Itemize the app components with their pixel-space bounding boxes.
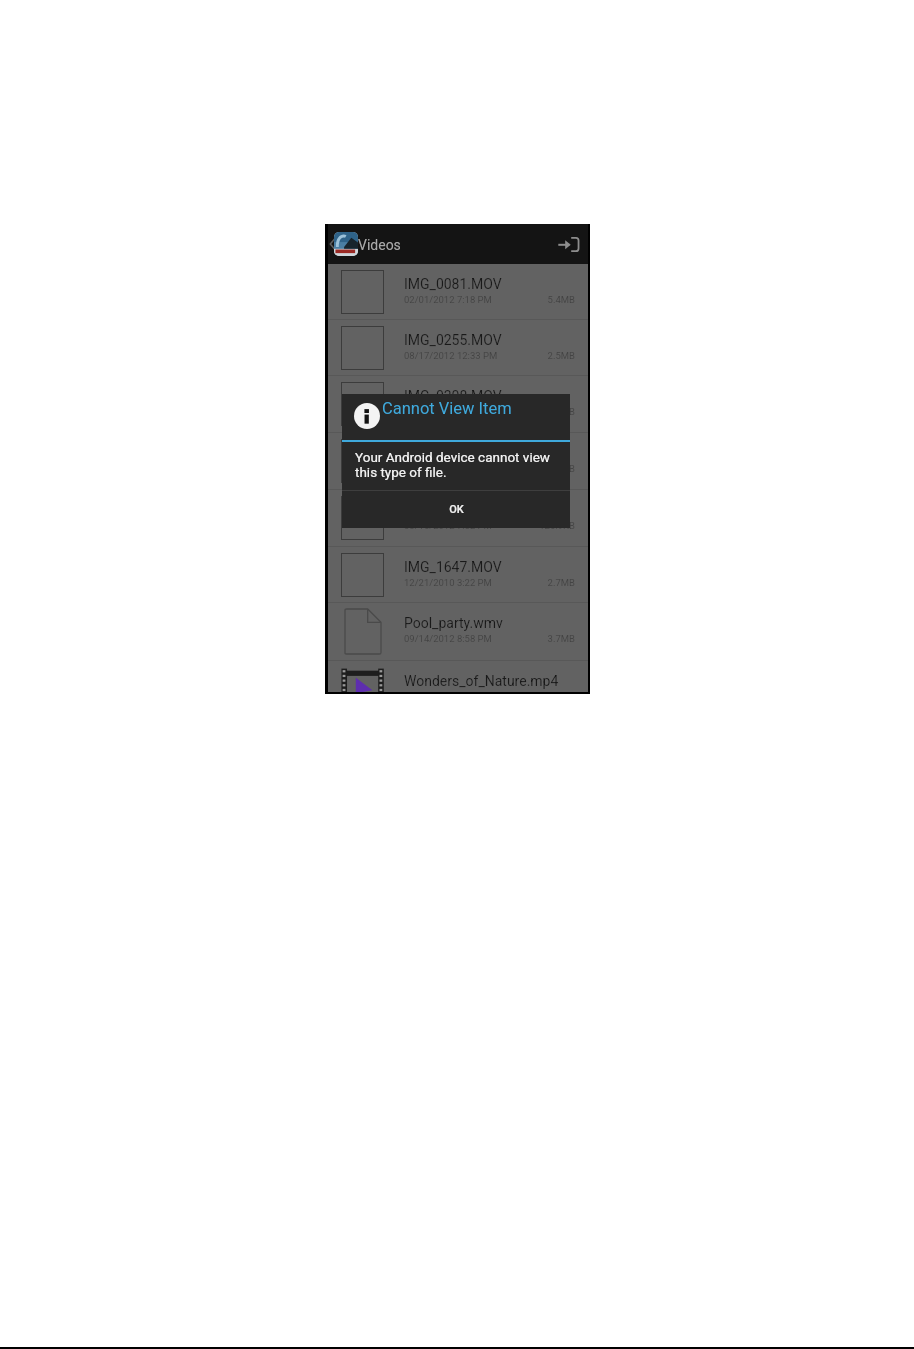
staticText: IMG_0081.MOV (404, 276, 502, 292)
button[interactable]: Pool_party.wmv (328, 603, 588, 661)
staticText: OK (449, 503, 464, 516)
staticText: 126.9KB (539, 520, 575, 531)
staticText: 07/03/2012 1:45 PM (404, 463, 492, 474)
button[interactable]: Log out (549, 226, 585, 262)
staticText: 3.7MB (547, 633, 575, 644)
staticText: IMG_0712.MOV (404, 445, 502, 461)
button[interactable]: Back (328, 235, 338, 253)
staticText: 05/11/2012 4:07 PM (404, 406, 492, 417)
staticText: 4.2MB (547, 463, 575, 474)
staticText: 2.7MB (547, 577, 575, 588)
button[interactable]: IMG_0081.MOV (328, 264, 588, 320)
staticText: 8.1MB (547, 406, 575, 417)
staticText: 5.4MB (547, 294, 575, 305)
button[interactable]: IMG_0255.MOV (328, 320, 588, 377)
staticText: 09/14/2012 8:58 PM (404, 633, 492, 644)
staticText: 08/17/2012 12:33 PM (404, 350, 498, 361)
staticText: Pool_party.wmv (404, 615, 503, 631)
staticText: IMG_0255.MOV (404, 332, 502, 348)
staticText: 2.5MB (547, 350, 575, 361)
staticText: Wonders_of_Nature.mp4 (404, 673, 559, 689)
staticText: IMG_0919.MOV (404, 502, 502, 518)
staticText: Cannot View Item (382, 399, 512, 418)
button[interactable]: Wonders_of_Nature.mp4 (328, 661, 588, 691)
staticText: 08/15/2012 7:52 PM (404, 520, 492, 531)
staticText: IMG_1647.MOV (404, 559, 502, 575)
button[interactable]: IMG_0712.MOV (328, 433, 588, 490)
button[interactable]: IMG_0308.MOV (328, 376, 588, 433)
button[interactable]: IMG_0919.MOV (328, 490, 588, 547)
staticText: Your Android device cannot view this typ… (355, 449, 550, 480)
button[interactable]: Videos app (334, 232, 358, 256)
button[interactable]: OK (342, 491, 570, 528)
staticText: 12/21/2010 3:22 PM (404, 577, 492, 588)
staticText: 02/01/2012 7:18 PM (404, 294, 492, 305)
staticText: Videos (358, 237, 401, 253)
staticText: IMG_0308.MOV (404, 388, 502, 404)
button[interactable]: IMG_1647.MOV (328, 547, 588, 603)
